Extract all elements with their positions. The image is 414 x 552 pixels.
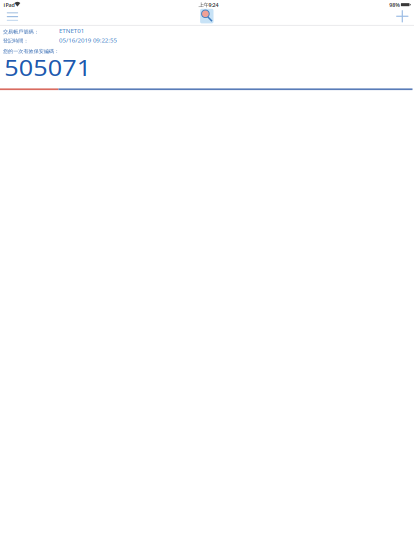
staticText: 交易帳戶號碼： [3,29,192,61]
staticText: 登記時間： [3,38,138,71]
button[interactable]: Menu [0,0,27,24]
staticText: 505071 [4,53,280,159]
staticText: 05/16/2019 09:22:55 [59,36,310,71]
staticText: ETNET01 [59,26,169,62]
staticText: 98% [389,1,400,8]
staticText: iPad [3,1,14,8]
button[interactable]: Home [200,9,213,23]
button[interactable]: Add [387,0,414,25]
staticText: 您的一次有效保安編碼： [3,48,300,81]
staticText: 上午9:24 [198,1,218,8]
